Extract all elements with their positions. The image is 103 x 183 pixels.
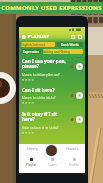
- staticText: English Internet Expressions: [21, 43, 55, 47]
- button[interactable]: Play: [76, 92, 83, 99]
- button[interactable]: Profile: [64, 157, 84, 167]
- staticText: PLAYLIST: [28, 34, 50, 40]
- button[interactable]: Play: [76, 63, 83, 70]
- button[interactable]: Learn: [42, 157, 62, 167]
- staticText: Mwen ka itilize plim ou?: [22, 72, 60, 77]
- button[interactable]: Asking and Giving Permission: [43, 49, 83, 54]
- staticText: Bank Words: [61, 43, 79, 47]
- button[interactable]: More options: [78, 35, 82, 39]
- button[interactable]: English Internet Expressions: [21, 42, 55, 47]
- staticText: Mwen ka chita isit la?: [22, 95, 56, 100]
- staticText: Listing: [27, 146, 38, 151]
- staticText: Is it okay if I sit here?: [22, 111, 70, 123]
- staticText: Can I use your pen, please?: [22, 58, 66, 70]
- button[interactable]: Practice: [63, 146, 81, 151]
- staticText: Practice: [66, 146, 79, 151]
- staticText: Learn: [48, 163, 57, 167]
- staticText: COMMONLY USED EXPRESSIONS: [0, 4, 103, 12]
- button[interactable]: Grid view: [71, 35, 75, 39]
- button[interactable]: Listing: [23, 146, 41, 151]
- staticText: Playlist: [26, 163, 37, 167]
- button[interactable]: Play: [76, 116, 83, 123]
- staticText: Asking and Giving Permission: [43, 50, 83, 54]
- staticText: Profile: [69, 163, 79, 167]
- button[interactable]: Can I sit here?: [22, 87, 83, 111]
- button[interactable]: Profile: [45, 144, 58, 157]
- button[interactable]: Can I use your pen, please?: [22, 58, 83, 87]
- button[interactable]: Playlist: [21, 157, 41, 167]
- staticText: Expression: [23, 50, 40, 54]
- button[interactable]: Is it okay if I sit here?: [22, 111, 83, 135]
- staticText: Can I sit here?: [22, 87, 55, 93]
- button[interactable]: Bank Words: [57, 42, 83, 47]
- button[interactable]: Expression: [21, 49, 41, 54]
- staticText: Eske sa bon si m chita?: [22, 125, 59, 130]
